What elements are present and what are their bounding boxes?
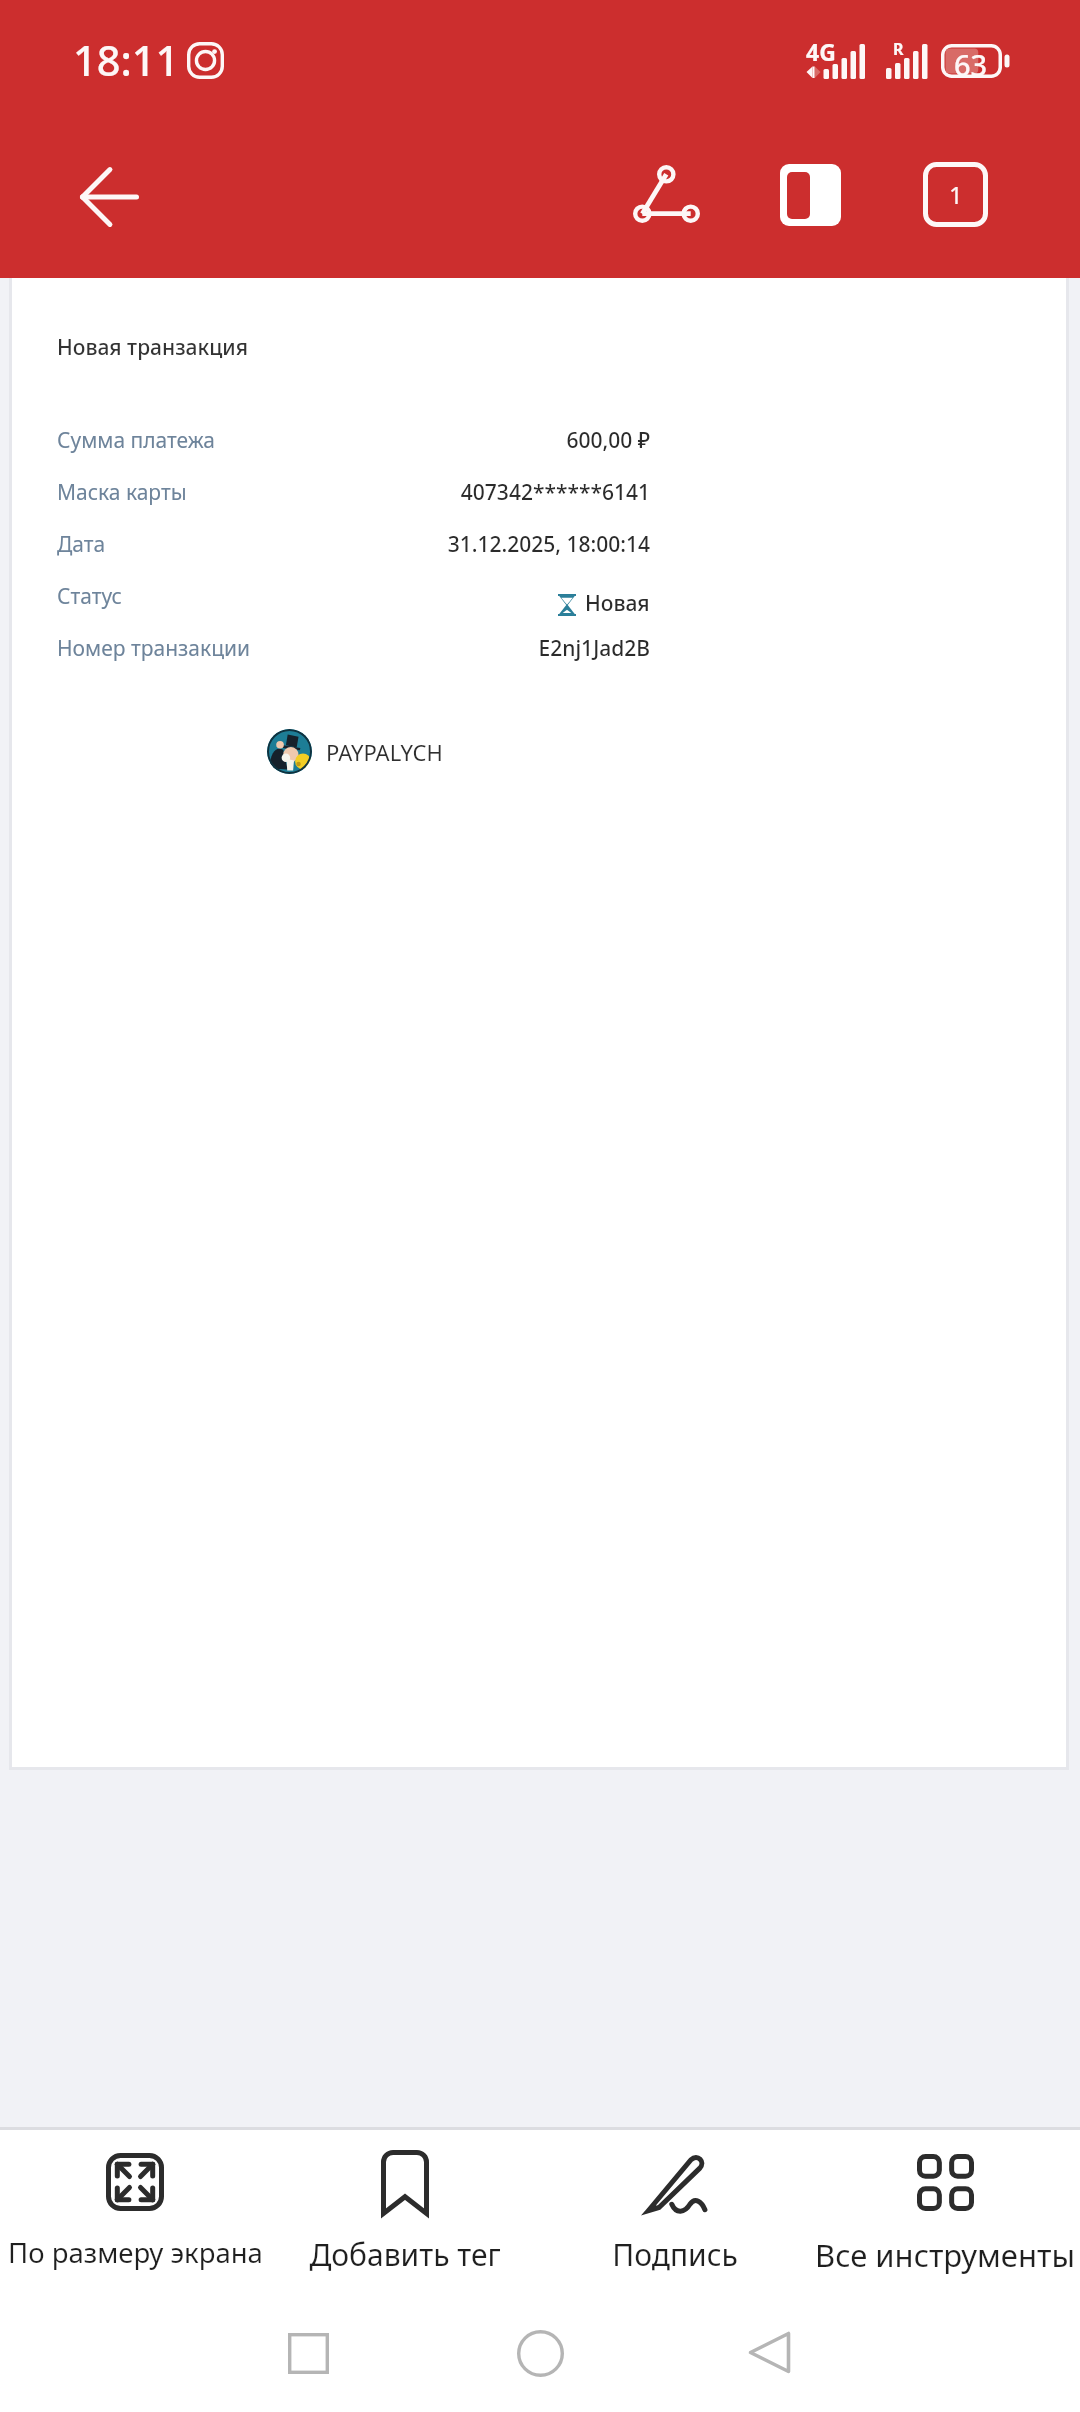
staticText: По размеру экрана	[8, 2234, 263, 2271]
staticText: Новая транзакция	[57, 333, 248, 362]
staticText: Номер транзакции	[57, 634, 251, 663]
staticText: Дата	[57, 530, 106, 559]
button[interactable]: Tabs: 1	[898, 138, 1010, 250]
staticText: 18:11	[73, 32, 180, 89]
staticText: Статус	[57, 582, 122, 611]
button[interactable]: Reading mode	[754, 138, 866, 250]
button[interactable]: Back	[748, 2331, 791, 2374]
button[interactable]: Recents	[288, 2333, 329, 2374]
staticText: Маска карты	[57, 478, 187, 507]
button[interactable]: Подпись	[540, 2130, 810, 2362]
staticText: R	[893, 38, 904, 60]
staticText: 1	[949, 178, 963, 211]
staticText: 4G	[806, 36, 836, 67]
staticText: Добавить тег	[309, 2234, 501, 2275]
staticText: Все инструменты	[815, 2234, 1075, 2276]
button[interactable]: Home	[517, 2330, 564, 2377]
button[interactable]: Back	[56, 141, 168, 253]
staticText: 600,00 ₽	[12, 426, 650, 455]
button[interactable]: Все инструменты	[810, 2130, 1080, 2362]
staticText: 63	[954, 45, 988, 79]
button[interactable]: По размеру экрана	[0, 2130, 270, 2362]
staticText: 31.12.2025, 18:00:14	[12, 530, 650, 559]
staticText: Сумма платежа	[57, 426, 215, 455]
staticText: E2nj1Jad2B	[12, 634, 650, 663]
staticText: Новая	[585, 589, 650, 618]
button[interactable]: Share	[610, 138, 722, 250]
staticText: PAYPALYCH	[326, 737, 443, 767]
staticText: Подпись	[612, 2234, 738, 2275]
staticText: 407342******6141	[12, 478, 650, 507]
button[interactable]: Добавить тег	[270, 2130, 540, 2362]
